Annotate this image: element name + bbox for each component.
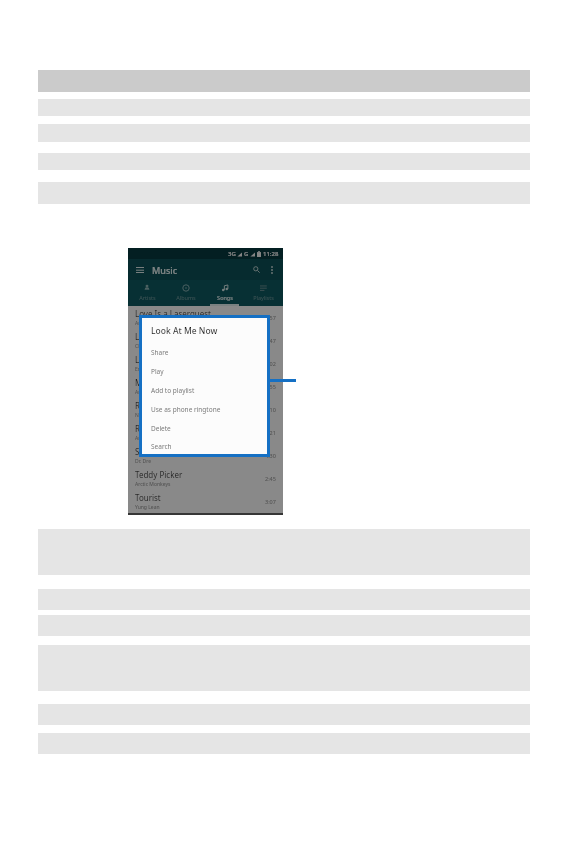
staticText: Share	[151, 348, 169, 357]
button[interactable]: Share	[142, 343, 267, 362]
staticText: 2:57	[265, 314, 276, 321]
staticText: 3:21	[265, 429, 276, 436]
staticText: Music	[152, 264, 178, 276]
staticText: Albums	[176, 294, 196, 301]
button[interactable]: R U Mine?	[128, 421, 283, 444]
staticText: Look At Me Now	[135, 331, 197, 342]
staticText: Delete	[151, 424, 171, 433]
button[interactable]: Mardy Bum	[128, 375, 283, 398]
staticText: 3G	[228, 250, 236, 258]
staticText: Yung Lean	[135, 504, 160, 511]
staticText: Use as phone ringtone	[151, 405, 221, 414]
staticText: Eminem	[135, 366, 155, 373]
button[interactable]: Open navigation drawer	[133, 263, 146, 276]
button[interactable]: Artists	[128, 280, 166, 306]
staticText: 3:07	[265, 498, 276, 505]
button[interactable]: Albums	[166, 280, 205, 306]
staticText: Red Right Hand	[135, 400, 194, 411]
button[interactable]: Tourist	[128, 490, 283, 513]
button[interactable]: Use as phone ringtone	[142, 400, 267, 419]
staticText: Chris Brown	[135, 343, 164, 350]
button[interactable]: Love Is a Laserquest	[128, 306, 283, 329]
staticText: Add to playlist	[151, 386, 195, 395]
staticText: Songs	[217, 294, 233, 301]
button[interactable]: Playlists	[244, 280, 283, 306]
button[interactable]: Lucky You	[128, 352, 283, 375]
button[interactable]: More options	[265, 263, 278, 276]
staticText: Nick Cave	[135, 412, 158, 419]
staticText: G	[244, 250, 249, 258]
button[interactable]: Still D.R.E.	[128, 444, 283, 467]
staticText: Tourist	[135, 492, 161, 503]
staticText: Still D.R.E.	[135, 446, 172, 457]
button[interactable]: Teddy Picker	[128, 467, 283, 490]
staticText: Search	[151, 442, 172, 451]
staticText: 2:55	[265, 383, 276, 390]
staticText: Play	[151, 367, 164, 376]
staticText: 6:10	[265, 406, 276, 413]
staticText: 11:28	[263, 250, 279, 258]
staticText: Arctic Monkeys	[135, 389, 171, 396]
staticText: 4:02	[265, 360, 276, 367]
button[interactable]: Play	[142, 362, 267, 381]
staticText: 4:30	[265, 452, 276, 459]
staticText: Artists	[139, 294, 156, 301]
staticText: Arctic Monkeys	[135, 320, 171, 327]
button[interactable]: Songs	[205, 280, 244, 306]
staticText: Arctic Monkeys	[135, 481, 171, 488]
staticText: Mardy Bum	[135, 377, 179, 388]
staticText: Dr. Dre	[135, 458, 151, 465]
staticText: R U Mine?	[135, 423, 173, 434]
button[interactable]: Search	[250, 263, 263, 276]
staticText: Lucky You	[135, 354, 173, 365]
button[interactable]: Look At Me Now	[128, 329, 283, 352]
staticText: Love Is a Laserquest	[135, 308, 211, 319]
staticText: 3:47	[265, 337, 276, 344]
staticText: Arctic Monkeys	[135, 435, 171, 442]
staticText: 2:45	[265, 475, 276, 482]
staticText: Look At Me Now	[151, 325, 218, 337]
staticText: Teddy Picker	[135, 469, 183, 480]
staticText: Playlists	[253, 294, 274, 301]
button[interactable]: Delete	[142, 419, 267, 438]
button[interactable]: Red Right Hand	[128, 398, 283, 421]
button[interactable]: Search	[142, 438, 267, 454]
button[interactable]: Add to playlist	[142, 381, 267, 400]
